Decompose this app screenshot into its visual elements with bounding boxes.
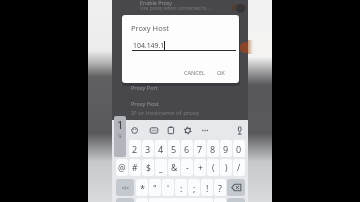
- staticText: ;: [193, 182, 196, 194]
- staticText: 4: [158, 143, 164, 155]
- button[interactable]: CANCEL: [177, 65, 211, 81]
- button[interactable]: [227, 179, 245, 196]
- staticText: 104.149.1: [133, 41, 165, 50]
- staticText: -: [186, 162, 189, 174]
- button[interactable]: !: [201, 179, 213, 196]
- staticText: 6: [184, 143, 190, 155]
- button[interactable]: 7: [194, 140, 206, 157]
- staticText: ?: [218, 182, 222, 194]
- button[interactable]: [214, 198, 226, 202]
- staticText: #: [132, 162, 138, 174]
- staticText: Proxy Host: [131, 23, 170, 33]
- staticText: 0: [236, 143, 242, 155]
- staticText: !: [206, 182, 209, 194]
- button[interactable]: [227, 198, 245, 202]
- button[interactable]: ': [162, 179, 174, 196]
- button[interactable]: ): [220, 159, 232, 176]
- staticText: 3: [145, 143, 151, 155]
- button[interactable]: _: [155, 159, 167, 176]
- button[interactable]: 8: [207, 140, 219, 157]
- button[interactable]: 4: [155, 140, 167, 157]
- button[interactable]: 5: [168, 140, 180, 157]
- button[interactable]: #: [129, 159, 141, 176]
- button[interactable]: ": [149, 179, 161, 196]
- staticText: $: [146, 162, 151, 174]
- staticText: IP or hostname of proxy: [131, 109, 199, 117]
- staticText: Use proxy when connected to ...: [140, 5, 212, 12]
- staticText: ¼: [118, 133, 122, 139]
- button[interactable]: 1: [114, 116, 126, 157]
- button[interactable]: [232, 4, 246, 11]
- button[interactable]: =\<: [116, 179, 134, 196]
- staticText: (: [212, 162, 215, 174]
- staticText: =\<: [122, 185, 129, 191]
- button[interactable]: 0: [233, 140, 245, 157]
- staticText: ': [167, 182, 170, 194]
- button[interactable]: $: [142, 159, 154, 176]
- staticText: +: [198, 162, 203, 174]
- button[interactable]: /: [233, 159, 245, 176]
- staticText: *: [140, 182, 145, 194]
- button[interactable]: 2: [129, 140, 141, 157]
- button[interactable]: OK: [212, 65, 229, 81]
- button[interactable]: ;: [188, 179, 200, 196]
- staticText: &: [171, 162, 178, 174]
- button[interactable]: :: [175, 179, 187, 196]
- staticText: 2: [132, 143, 138, 155]
- staticText: 9: [223, 143, 229, 155]
- staticText: :: [180, 182, 183, 194]
- staticText: _: [159, 162, 163, 174]
- button[interactable]: -: [181, 159, 193, 176]
- button[interactable]: +: [194, 159, 206, 176]
- button[interactable]: &: [168, 159, 180, 176]
- staticText: 1: [117, 117, 124, 131]
- button[interactable]: 3: [142, 140, 154, 157]
- staticText: /: [237, 162, 241, 174]
- staticText: OK: [217, 69, 225, 77]
- staticText: 7: [197, 143, 203, 155]
- button[interactable]: 9: [220, 140, 232, 157]
- staticText: ": [153, 182, 157, 194]
- button[interactable]: *: [136, 179, 148, 196]
- button[interactable]: (: [207, 159, 219, 176]
- button[interactable]: @: [116, 159, 128, 176]
- staticText: @: [118, 162, 126, 174]
- button[interactable]: [116, 198, 134, 202]
- staticText: Enable Proxy: [140, 0, 173, 6]
- button[interactable]: [136, 198, 148, 202]
- staticText: CANCEL: [184, 69, 205, 77]
- button[interactable]: ?: [214, 179, 226, 196]
- staticText: Proxy Port: [131, 84, 158, 91]
- staticText: 8: [210, 143, 216, 155]
- staticText: ): [225, 162, 228, 174]
- staticText: 5: [171, 143, 177, 155]
- staticText: Proxy Host: [131, 100, 159, 107]
- button[interactable]: 6: [181, 140, 193, 157]
